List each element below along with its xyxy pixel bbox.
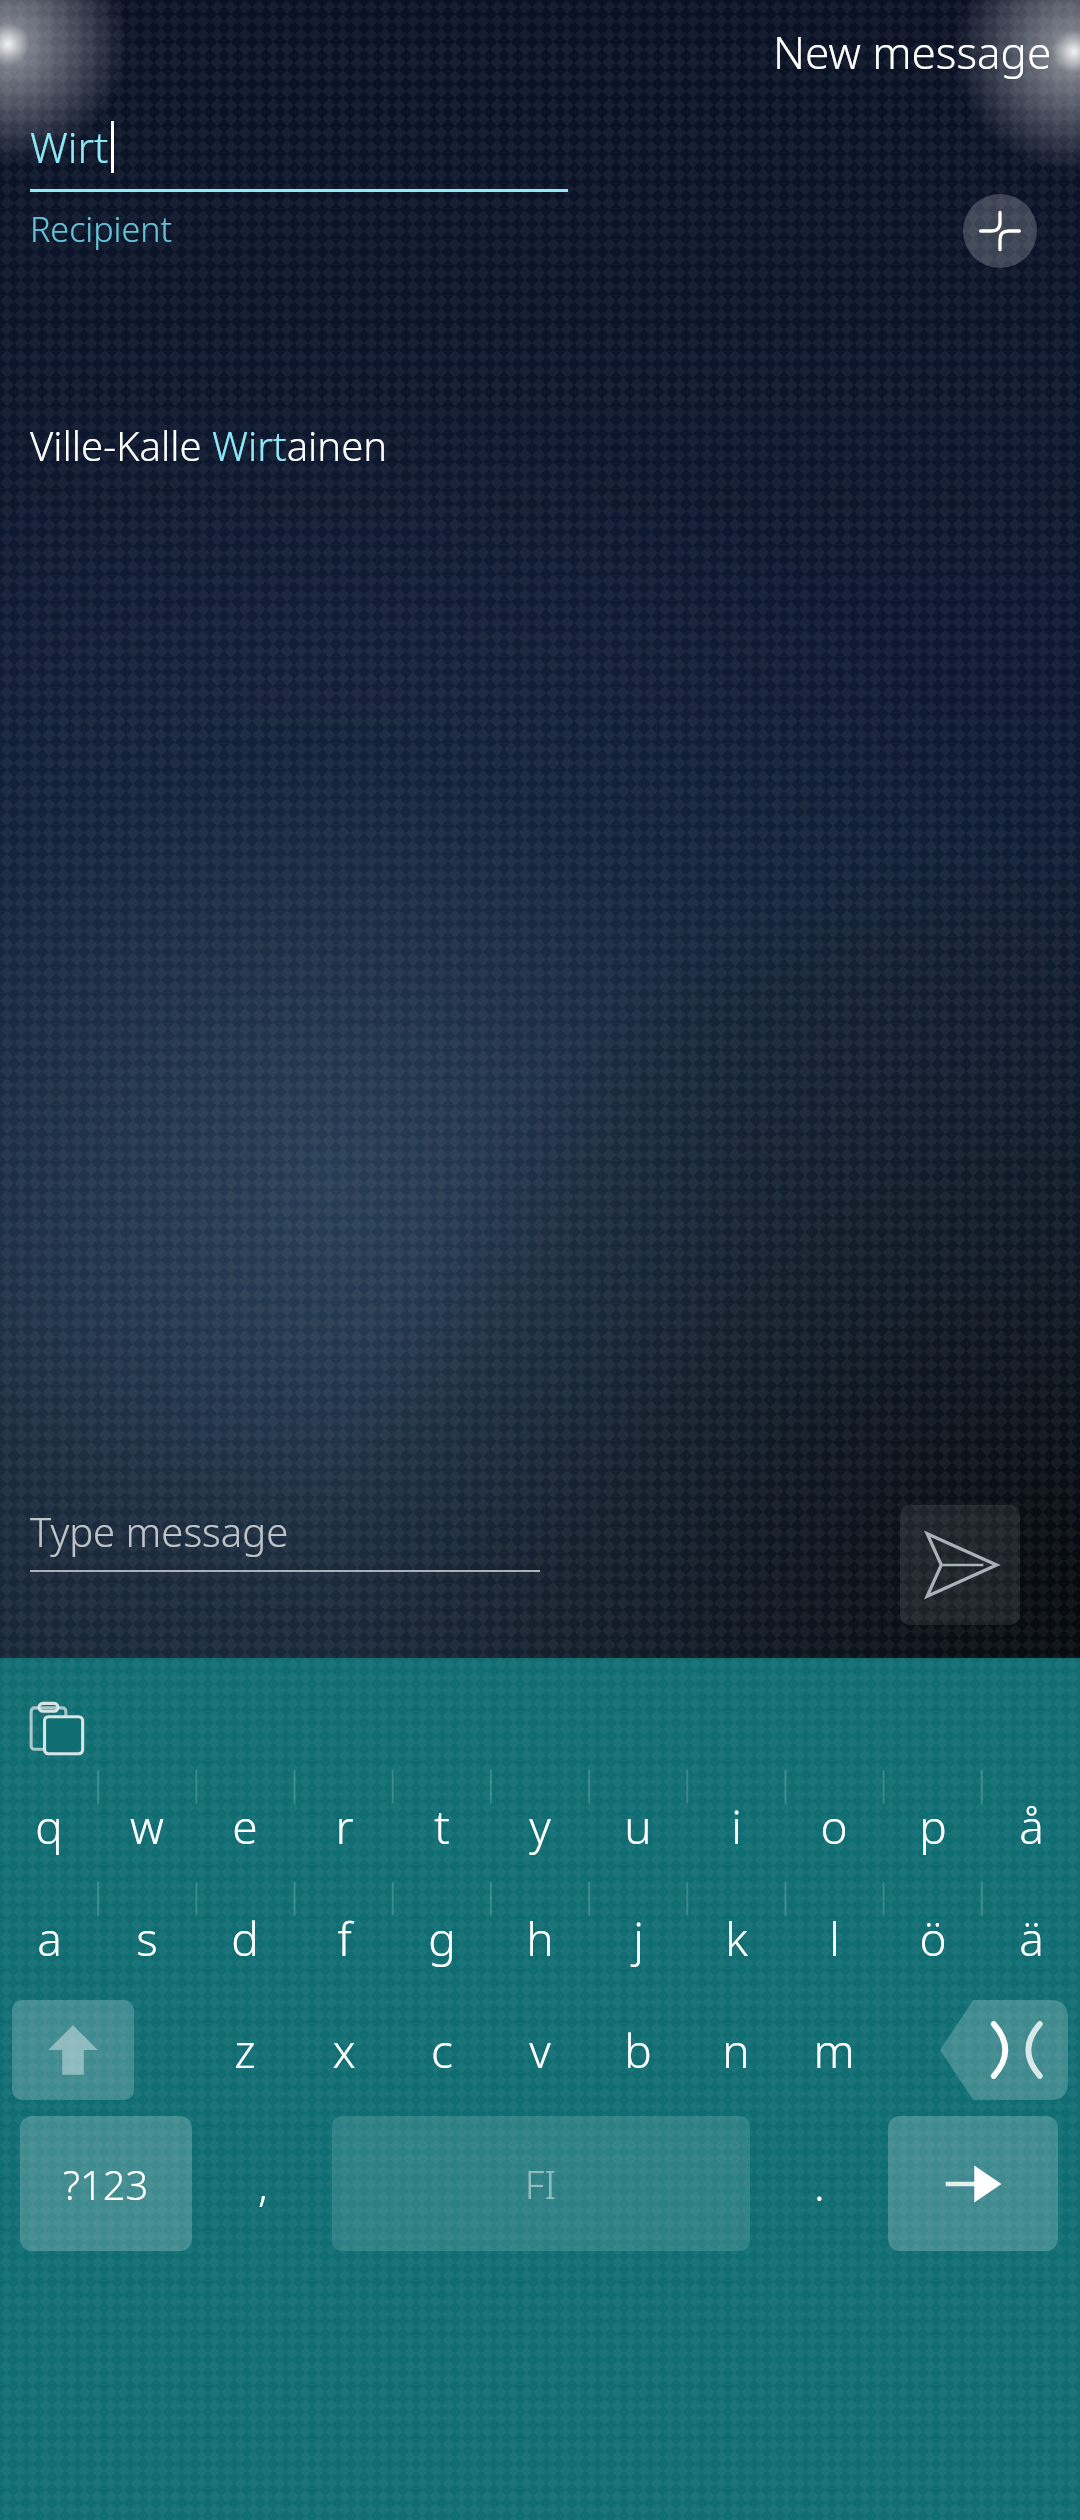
- staticText: k: [725, 1907, 748, 1970]
- button[interactable]: w: [98, 1770, 196, 1882]
- button[interactable]: u: [589, 1770, 687, 1882]
- staticText: x: [332, 2019, 356, 2082]
- button[interactable]: o: [785, 1770, 883, 1882]
- staticText: l: [829, 1907, 840, 1970]
- staticText: f: [337, 1907, 352, 1970]
- staticText: Ville-Kalle Wirtainen: [30, 418, 388, 472]
- staticText: b: [624, 2019, 652, 2082]
- button[interactable]: å: [982, 1770, 1080, 1882]
- button[interactable]: d: [196, 1882, 294, 1994]
- staticText: Wirt: [30, 118, 109, 175]
- staticText: i: [731, 1795, 742, 1858]
- button[interactable]: e: [196, 1770, 294, 1882]
- button[interactable]: z: [196, 1994, 294, 2106]
- button[interactable]: v: [491, 1994, 589, 2106]
- staticText: r: [335, 1795, 354, 1858]
- staticText: ,: [258, 2154, 268, 2214]
- staticText: p: [919, 1795, 947, 1858]
- staticText: ä: [1019, 1907, 1044, 1970]
- button[interactable]: t: [393, 1770, 491, 1882]
- button[interactable]: Add recipient: [963, 194, 1037, 268]
- staticText: e: [232, 1795, 258, 1858]
- staticText: w: [130, 1795, 164, 1858]
- staticText: ö: [919, 1907, 947, 1970]
- staticText: c: [431, 2019, 453, 2082]
- staticText: q: [35, 1795, 63, 1858]
- button[interactable]: s: [98, 1882, 196, 1994]
- staticText: å: [1019, 1795, 1044, 1858]
- button[interactable]: i: [687, 1770, 785, 1882]
- staticText: Recipient: [30, 206, 173, 252]
- staticText: h: [526, 1907, 554, 1970]
- staticText: d: [231, 1907, 259, 1970]
- button[interactable]: ?123: [20, 2116, 192, 2251]
- staticText: j: [633, 1907, 644, 1970]
- staticText: Type message: [30, 1504, 289, 1558]
- staticText: a: [37, 1907, 62, 1970]
- button[interactable]: ä: [982, 1882, 1080, 1994]
- staticText: u: [624, 1795, 652, 1858]
- staticText: z: [234, 2019, 256, 2082]
- staticText: s: [136, 1907, 158, 1970]
- staticText: g: [428, 1907, 456, 1970]
- button[interactable]: f: [295, 1882, 393, 1994]
- button[interactable]: .: [756, 2116, 882, 2251]
- button[interactable]: y: [491, 1770, 589, 1882]
- button[interactable]: a: [0, 1882, 98, 1994]
- button[interactable]: c: [393, 1994, 491, 2106]
- button[interactable]: p: [884, 1770, 982, 1882]
- button[interactable]: x: [295, 1994, 393, 2106]
- button[interactable]: j: [589, 1882, 687, 1994]
- staticText: t: [434, 1795, 450, 1858]
- staticText: o: [820, 1795, 848, 1858]
- staticText: .: [814, 2154, 825, 2214]
- button[interactable]: ,: [200, 2116, 326, 2251]
- button[interactable]: b: [589, 1994, 687, 2106]
- button[interactable]: Shift: [12, 2000, 134, 2100]
- button[interactable]: Clipboard: [20, 1690, 96, 1766]
- staticText: m: [813, 2019, 855, 2082]
- button[interactable]: Type message: [30, 1504, 540, 1572]
- button[interactable]: n: [687, 1994, 785, 2106]
- staticText: FI: [525, 2158, 557, 2210]
- staticText: ?123: [63, 2157, 149, 2211]
- button[interactable]: q: [0, 1770, 98, 1882]
- staticText: v: [529, 2019, 551, 2082]
- button[interactable]: g: [393, 1882, 491, 1994]
- button[interactable]: Backspace: [940, 2000, 1068, 2100]
- staticText: y: [529, 1795, 551, 1858]
- staticText: New message: [773, 22, 1052, 82]
- button[interactable]: k: [687, 1882, 785, 1994]
- button[interactable]: Enter: [888, 2116, 1058, 2251]
- button[interactable]: Send: [900, 1505, 1020, 1625]
- button[interactable]: FI: [332, 2116, 750, 2251]
- button[interactable]: m: [785, 1994, 883, 2106]
- staticText: n: [722, 2019, 750, 2082]
- button[interactable]: l: [785, 1882, 883, 1994]
- button[interactable]: Ville-Kalle Wirtainen: [0, 405, 1080, 485]
- button[interactable]: h: [491, 1882, 589, 1994]
- button[interactable]: ö: [884, 1882, 982, 1994]
- button[interactable]: r: [295, 1770, 393, 1882]
